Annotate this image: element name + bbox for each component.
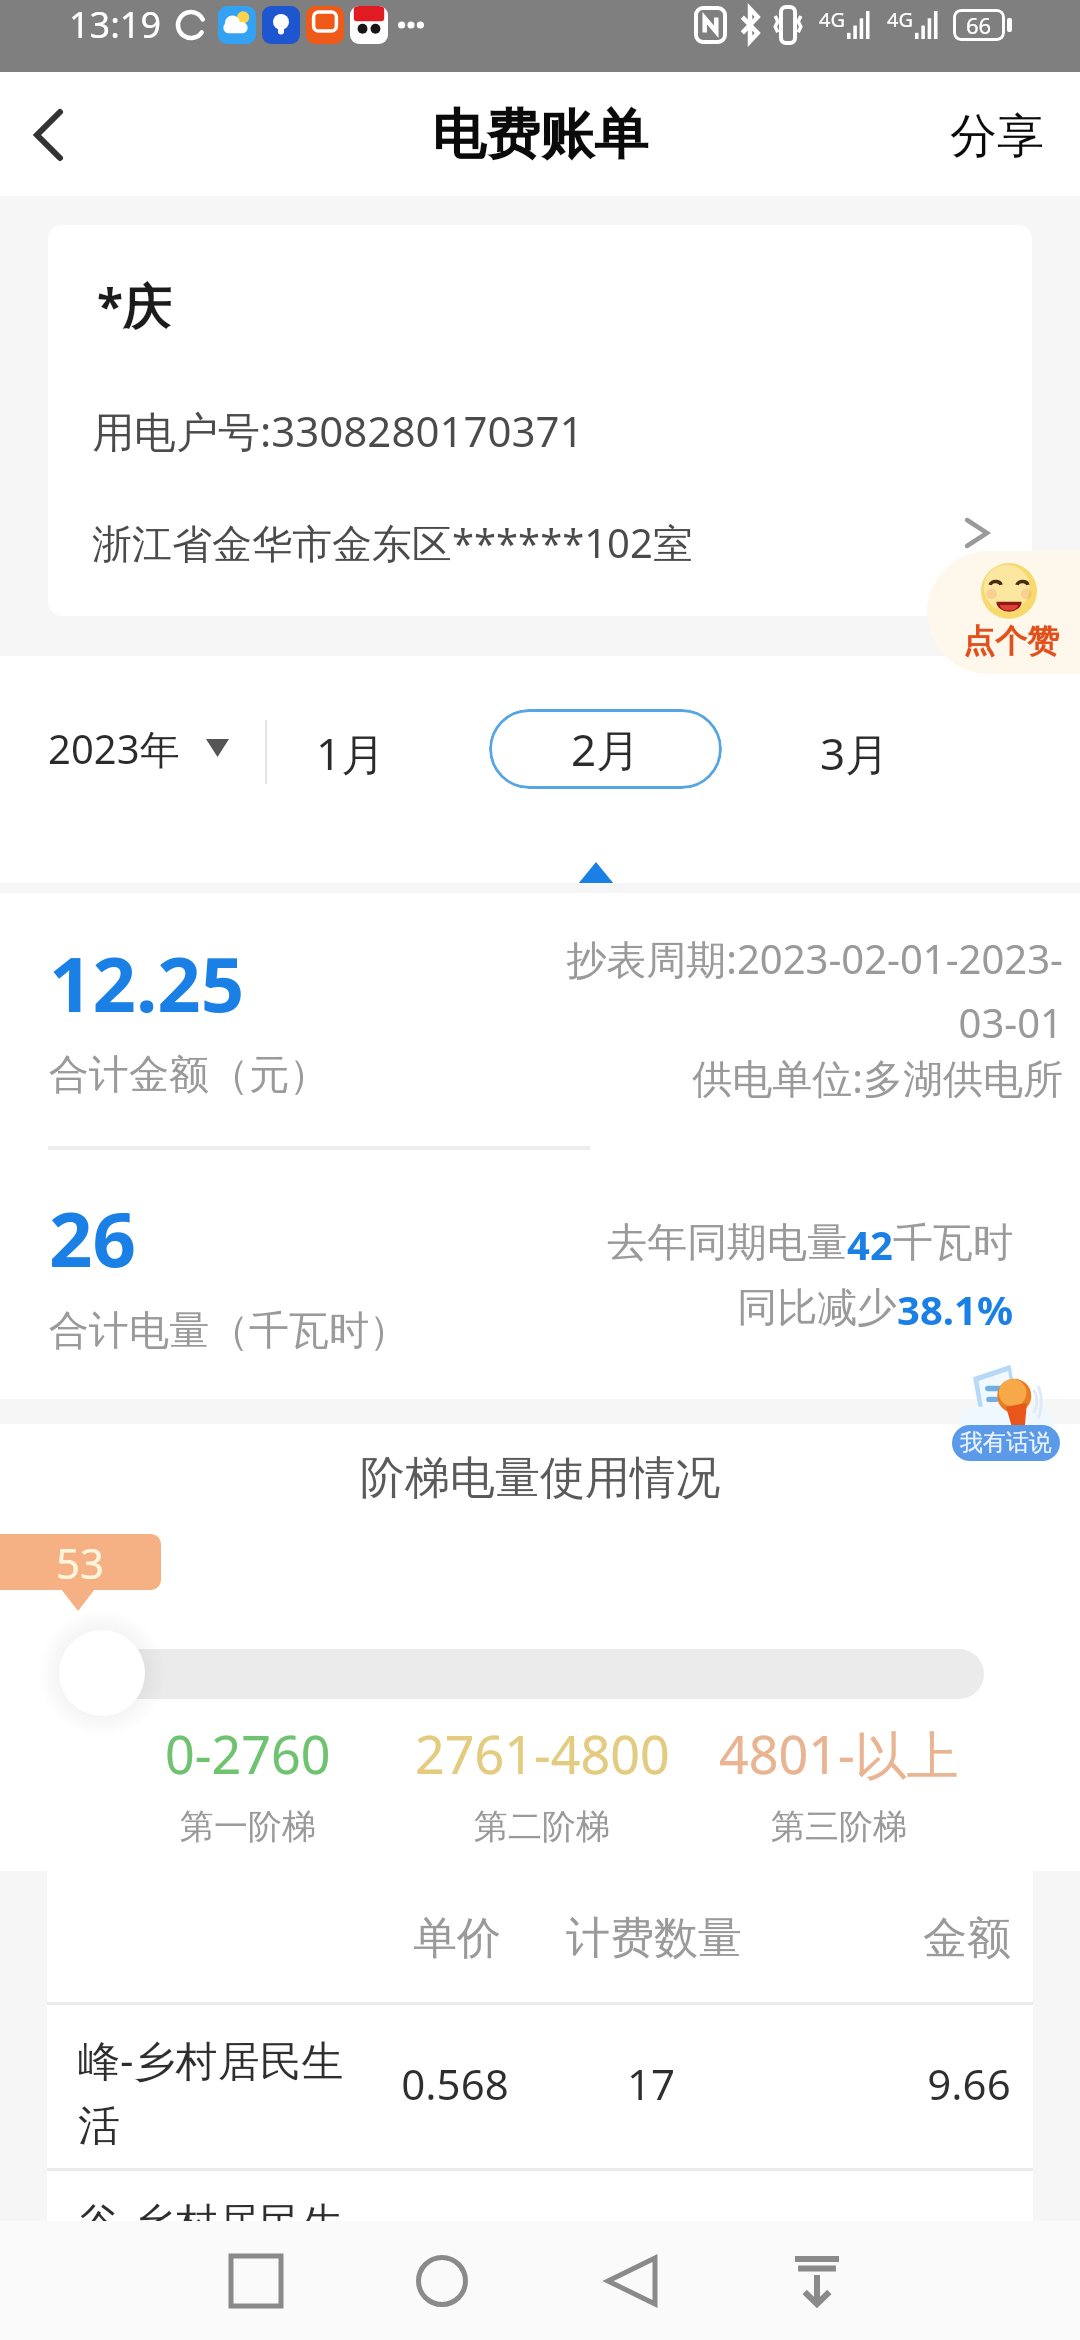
- staticText: 去年同期电量: [607, 1217, 847, 1267]
- staticText: 电费账单: [432, 101, 648, 169]
- button[interactable]: Back: [0, 72, 110, 196]
- staticText: 峰-乡村居民生 活: [78, 2031, 344, 2152]
- staticText: 千瓦时: [893, 1217, 1013, 1267]
- staticText: 同比减少: [737, 1282, 897, 1332]
- button[interactable]: 3月: [780, 710, 930, 796]
- button[interactable]: Home: [382, 2221, 502, 2340]
- staticText: 0-2760: [165, 1718, 331, 1789]
- staticText: 第一阶梯: [180, 1805, 316, 1848]
- staticText: 17: [451, 2055, 851, 2112]
- staticText: 计费数量: [454, 1911, 854, 1966]
- button[interactable]: *庆: [48, 225, 1032, 616]
- button[interactable]: 2月: [489, 709, 722, 789]
- button[interactable]: Hide keyboard: [757, 2221, 877, 2340]
- staticText: 53: [56, 1534, 105, 1590]
- button[interactable]: 1月: [276, 710, 426, 796]
- staticText: 2761-4800: [415, 1718, 670, 1789]
- staticText: 3月: [820, 723, 890, 783]
- staticText: 1月: [316, 723, 386, 783]
- button[interactable]: 我有话说: [951, 1360, 1061, 1462]
- button[interactable]: 2023年: [48, 705, 229, 791]
- staticText: 12.25: [49, 931, 245, 1035]
- staticText: 26: [49, 1186, 136, 1290]
- staticText: 单价: [257, 1911, 657, 1966]
- staticText: 4G: [887, 6, 913, 33]
- staticText: 38.1%: [897, 1282, 1013, 1336]
- staticText: 第三阶梯: [771, 1805, 907, 1848]
- button[interactable]: 点个赞: [927, 551, 1080, 674]
- staticText: 点个赞: [963, 621, 1059, 661]
- staticText: 第二阶梯: [474, 1805, 610, 1848]
- staticText: *庆: [97, 273, 172, 339]
- button[interactable]: Recents: [196, 2221, 316, 2340]
- staticText: 42: [847, 1217, 893, 1271]
- staticText: 4801-以上: [719, 1718, 959, 1789]
- staticText: 66: [966, 10, 992, 40]
- staticText: 抄表周期:2023-02-01-2023-: [543, 931, 1063, 986]
- staticText: 阶梯电量使用情况: [0, 1450, 1080, 1507]
- staticText: 我有话说: [960, 1428, 1052, 1457]
- staticText: 用电户号:3308280170371: [92, 402, 584, 459]
- button[interactable]: 分享: [950, 72, 1044, 196]
- staticText: 2月: [571, 719, 641, 779]
- staticText: 金额: [767, 1911, 1080, 1966]
- button[interactable]: Back: [571, 2221, 691, 2340]
- staticText: 4G: [819, 6, 845, 33]
- staticText: 分享: [950, 107, 1044, 166]
- staticText: 浙江省金华市金东区******102室: [92, 515, 693, 570]
- staticText: 13:19: [69, 0, 162, 49]
- staticText: 谷-乡村居民生: [78, 2193, 344, 2250]
- staticText: 9.66: [769, 2055, 1080, 2112]
- staticText: 2023年: [48, 721, 180, 776]
- staticText: 供电单位:多湖供电所: [543, 1050, 1063, 1105]
- staticText: 合计电量（千瓦时）: [49, 1305, 409, 1355]
- staticText: 0.568: [255, 2055, 655, 2112]
- staticText: 合计金额（元）: [49, 1049, 329, 1099]
- staticText: 03-01: [543, 995, 1063, 1049]
